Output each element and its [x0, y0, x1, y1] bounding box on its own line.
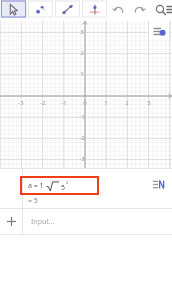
staticText: 2 [118, 99, 136, 107]
button[interactable]: Undo [108, 0, 129, 21]
staticText: 3 [140, 99, 158, 107]
staticText: -1 [73, 113, 91, 121]
staticText: -3 [12, 99, 30, 107]
staticText: 2 [66, 180, 69, 185]
button[interactable]: Add input [0, 209, 172, 234]
staticText: 1 [97, 99, 115, 107]
button[interactable]: Move tool [0, 0, 27, 21]
staticText: -1 [55, 99, 73, 107]
button[interactable]: Menu [171, 0, 172, 21]
staticText: -2 [73, 134, 91, 142]
other: Add input [0, 209, 23, 234]
button[interactable]: Style bar [149, 23, 169, 40]
button[interactable]: a = 1 [20, 176, 99, 195]
staticText: Input… [31, 217, 55, 227]
staticText: = 5 [28, 196, 38, 206]
staticText: 0 [76, 99, 94, 107]
button[interactable]: Search [150, 0, 171, 21]
button[interactable]: Point tool [27, 0, 54, 21]
button[interactable]: Perpendicular tool [81, 0, 108, 21]
staticText: 3 [73, 28, 91, 36]
button[interactable]: Math keyboard [150, 177, 168, 192]
staticText: a = 1 [28, 181, 44, 191]
staticText: -3 [73, 155, 91, 163]
button[interactable]: Line tool [54, 0, 81, 21]
staticText: 5 [61, 183, 66, 193]
button[interactable]: Redo [129, 0, 150, 21]
staticText: 2 [73, 49, 91, 57]
staticText: -2 [34, 99, 52, 107]
staticText: 1 [73, 70, 91, 78]
